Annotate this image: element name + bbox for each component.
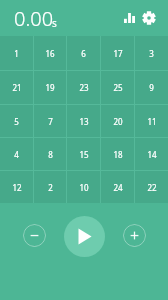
button[interactable]: 16 xyxy=(34,36,66,70)
button[interactable]: 17 xyxy=(101,36,134,70)
staticText: 15 xyxy=(79,149,89,160)
button[interactable]: Start xyxy=(64,216,105,257)
button[interactable]: 8 xyxy=(34,138,66,170)
button[interactable]: 21 xyxy=(0,71,33,104)
staticText: 25 xyxy=(113,82,123,93)
button[interactable]: 10 xyxy=(67,171,100,203)
button[interactable]: 22 xyxy=(135,171,168,203)
button[interactable]: 20 xyxy=(101,105,134,137)
button[interactable]: 11 xyxy=(135,105,168,137)
staticText: 6 xyxy=(81,48,86,59)
button[interactable]: 6 xyxy=(67,36,100,70)
button[interactable]: 25 xyxy=(101,71,134,104)
staticText: 2 xyxy=(48,182,53,193)
button[interactable]: 15 xyxy=(67,138,100,170)
staticText: 9 xyxy=(149,82,154,93)
button[interactable]: 18 xyxy=(101,138,134,170)
button[interactable]: Settings xyxy=(139,8,159,28)
button[interactable]: 2 xyxy=(34,171,66,203)
staticText: s xyxy=(52,16,57,30)
button[interactable]: 12 xyxy=(0,171,33,203)
staticText: 22 xyxy=(147,182,157,193)
button[interactable]: Statistics xyxy=(118,7,140,29)
button[interactable]: 19 xyxy=(34,71,66,104)
button[interactable]: 3 xyxy=(135,36,168,70)
button[interactable]: 14 xyxy=(135,138,168,170)
button[interactable]: 24 xyxy=(101,171,134,203)
button[interactable]: 13 xyxy=(67,105,100,137)
staticText: 7 xyxy=(48,116,53,127)
staticText: 20 xyxy=(113,116,123,127)
staticText: 0.00 xyxy=(14,5,54,32)
staticText: 5 xyxy=(14,116,19,127)
staticText: 12 xyxy=(12,182,22,193)
staticText: 13 xyxy=(79,116,89,127)
button[interactable]: 4 xyxy=(0,138,33,170)
staticText: 19 xyxy=(45,82,55,93)
button[interactable]: 5 xyxy=(0,105,33,137)
button[interactable]: 9 xyxy=(135,71,168,104)
staticText: 3 xyxy=(149,48,154,59)
staticText: 1 xyxy=(14,48,19,59)
staticText: 24 xyxy=(113,182,123,193)
staticText: 10 xyxy=(79,182,89,193)
staticText: 21 xyxy=(12,82,22,93)
staticText: 8 xyxy=(48,149,53,160)
staticText: 4 xyxy=(14,149,19,160)
staticText: 18 xyxy=(113,149,123,160)
staticText: 11 xyxy=(147,116,157,127)
button[interactable]: 7 xyxy=(34,105,66,137)
button[interactable]: Increase xyxy=(123,224,146,247)
staticText: 17 xyxy=(113,48,123,59)
button[interactable]: 1 xyxy=(0,36,33,70)
button[interactable]: Decrease xyxy=(23,224,46,247)
button[interactable]: 23 xyxy=(67,71,100,104)
staticText: 23 xyxy=(79,82,89,93)
staticText: 14 xyxy=(147,149,157,160)
staticText: 16 xyxy=(45,48,55,59)
